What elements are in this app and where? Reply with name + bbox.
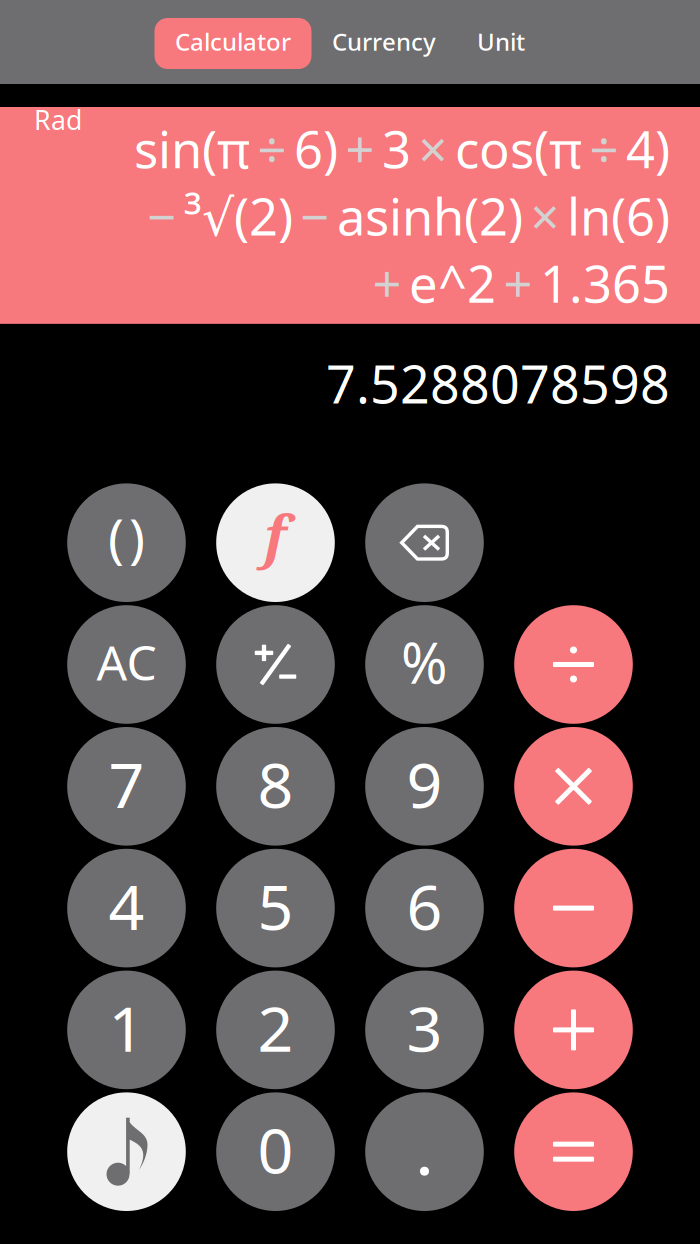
button[interactable]: ( ) [67, 483, 186, 602]
staticText: Currency [332, 26, 436, 57]
staticText: 3 [406, 986, 442, 1069]
staticText: + [345, 115, 374, 182]
button[interactable]: AC [67, 605, 186, 724]
staticText: e^2 [409, 250, 496, 317]
staticText: 3 [382, 115, 411, 182]
staticText: ³√(2) [184, 182, 293, 250]
button[interactable]: Multiply [514, 727, 633, 846]
button[interactable]: 6 [365, 849, 484, 967]
staticText: − [147, 182, 176, 250]
staticText: 6 [406, 864, 442, 947]
staticText: 6) [294, 115, 338, 182]
staticText: + [372, 250, 401, 317]
staticText: 0 [257, 1108, 293, 1191]
button[interactable]: 4 [67, 849, 186, 967]
staticText: 5 [257, 864, 293, 947]
button[interactable]: Decimal point [365, 1092, 484, 1211]
staticText: 4) [626, 115, 670, 182]
staticText: sin(π [134, 115, 250, 182]
staticText: ÷ [257, 115, 286, 182]
button[interactable]: Currency [311, 18, 456, 69]
button[interactable]: Functions [216, 483, 335, 602]
button[interactable]: Unit [456, 18, 545, 69]
staticText: ( ) [108, 501, 145, 572]
button[interactable]: 0 [216, 1092, 335, 1211]
staticText: ln(6) [567, 182, 670, 250]
staticText: 1.365 [540, 250, 670, 317]
staticText: asinh(2) [337, 182, 523, 250]
button[interactable]: % [365, 605, 484, 724]
staticText: cos(π [455, 115, 582, 182]
staticText: % [401, 625, 448, 699]
button[interactable]: Minus [514, 849, 633, 967]
button[interactable]: Plus [514, 971, 633, 1089]
staticText: 1 [108, 986, 144, 1069]
staticText: 8 [257, 742, 293, 825]
staticText: × [530, 182, 559, 250]
staticText: 7.5288078598 [326, 349, 670, 418]
button[interactable]: 1 [67, 971, 186, 1089]
staticText: 4 [108, 864, 144, 947]
button[interactable]: Sound [67, 1092, 186, 1211]
staticText: × [418, 115, 447, 182]
button[interactable]: 7 [67, 727, 186, 846]
button[interactable]: Delete [365, 483, 484, 602]
button[interactable]: 9 [365, 727, 484, 846]
staticText: Unit [477, 26, 525, 57]
staticText: 2 [257, 986, 293, 1069]
staticText: AC [96, 630, 156, 694]
staticText: 9 [406, 742, 442, 825]
button[interactable]: Plus minus [216, 605, 335, 724]
button[interactable]: Divide [514, 605, 633, 724]
staticText: + [503, 250, 532, 317]
button[interactable]: 3 [365, 971, 484, 1089]
button[interactable]: 2 [216, 971, 335, 1089]
staticText: f [264, 497, 287, 573]
button[interactable]: Calculator [154, 18, 311, 69]
staticText: 7 [108, 742, 144, 825]
button[interactable]: Equals [514, 1092, 633, 1211]
button[interactable]: 5 [216, 849, 335, 967]
staticText: ÷ [589, 115, 618, 182]
staticText: Calculator [175, 26, 291, 57]
button[interactable]: 8 [216, 727, 335, 846]
staticText: − [300, 182, 329, 250]
staticText: Rad [34, 102, 82, 137]
